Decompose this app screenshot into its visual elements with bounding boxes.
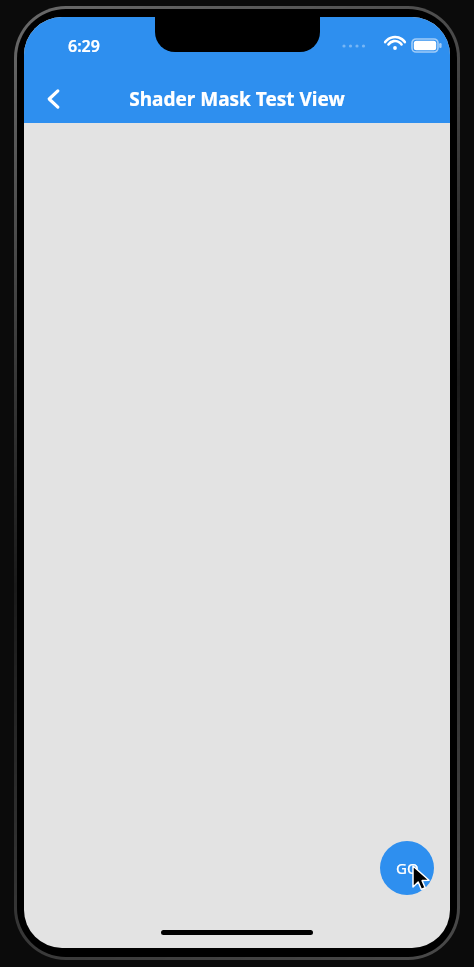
button[interactable]: Back xyxy=(30,75,78,123)
staticText: 6:29 xyxy=(68,35,100,57)
staticText: GO xyxy=(396,858,419,878)
staticText: Shader Mask Test View xyxy=(129,86,345,112)
button[interactable]: GO xyxy=(380,841,434,895)
